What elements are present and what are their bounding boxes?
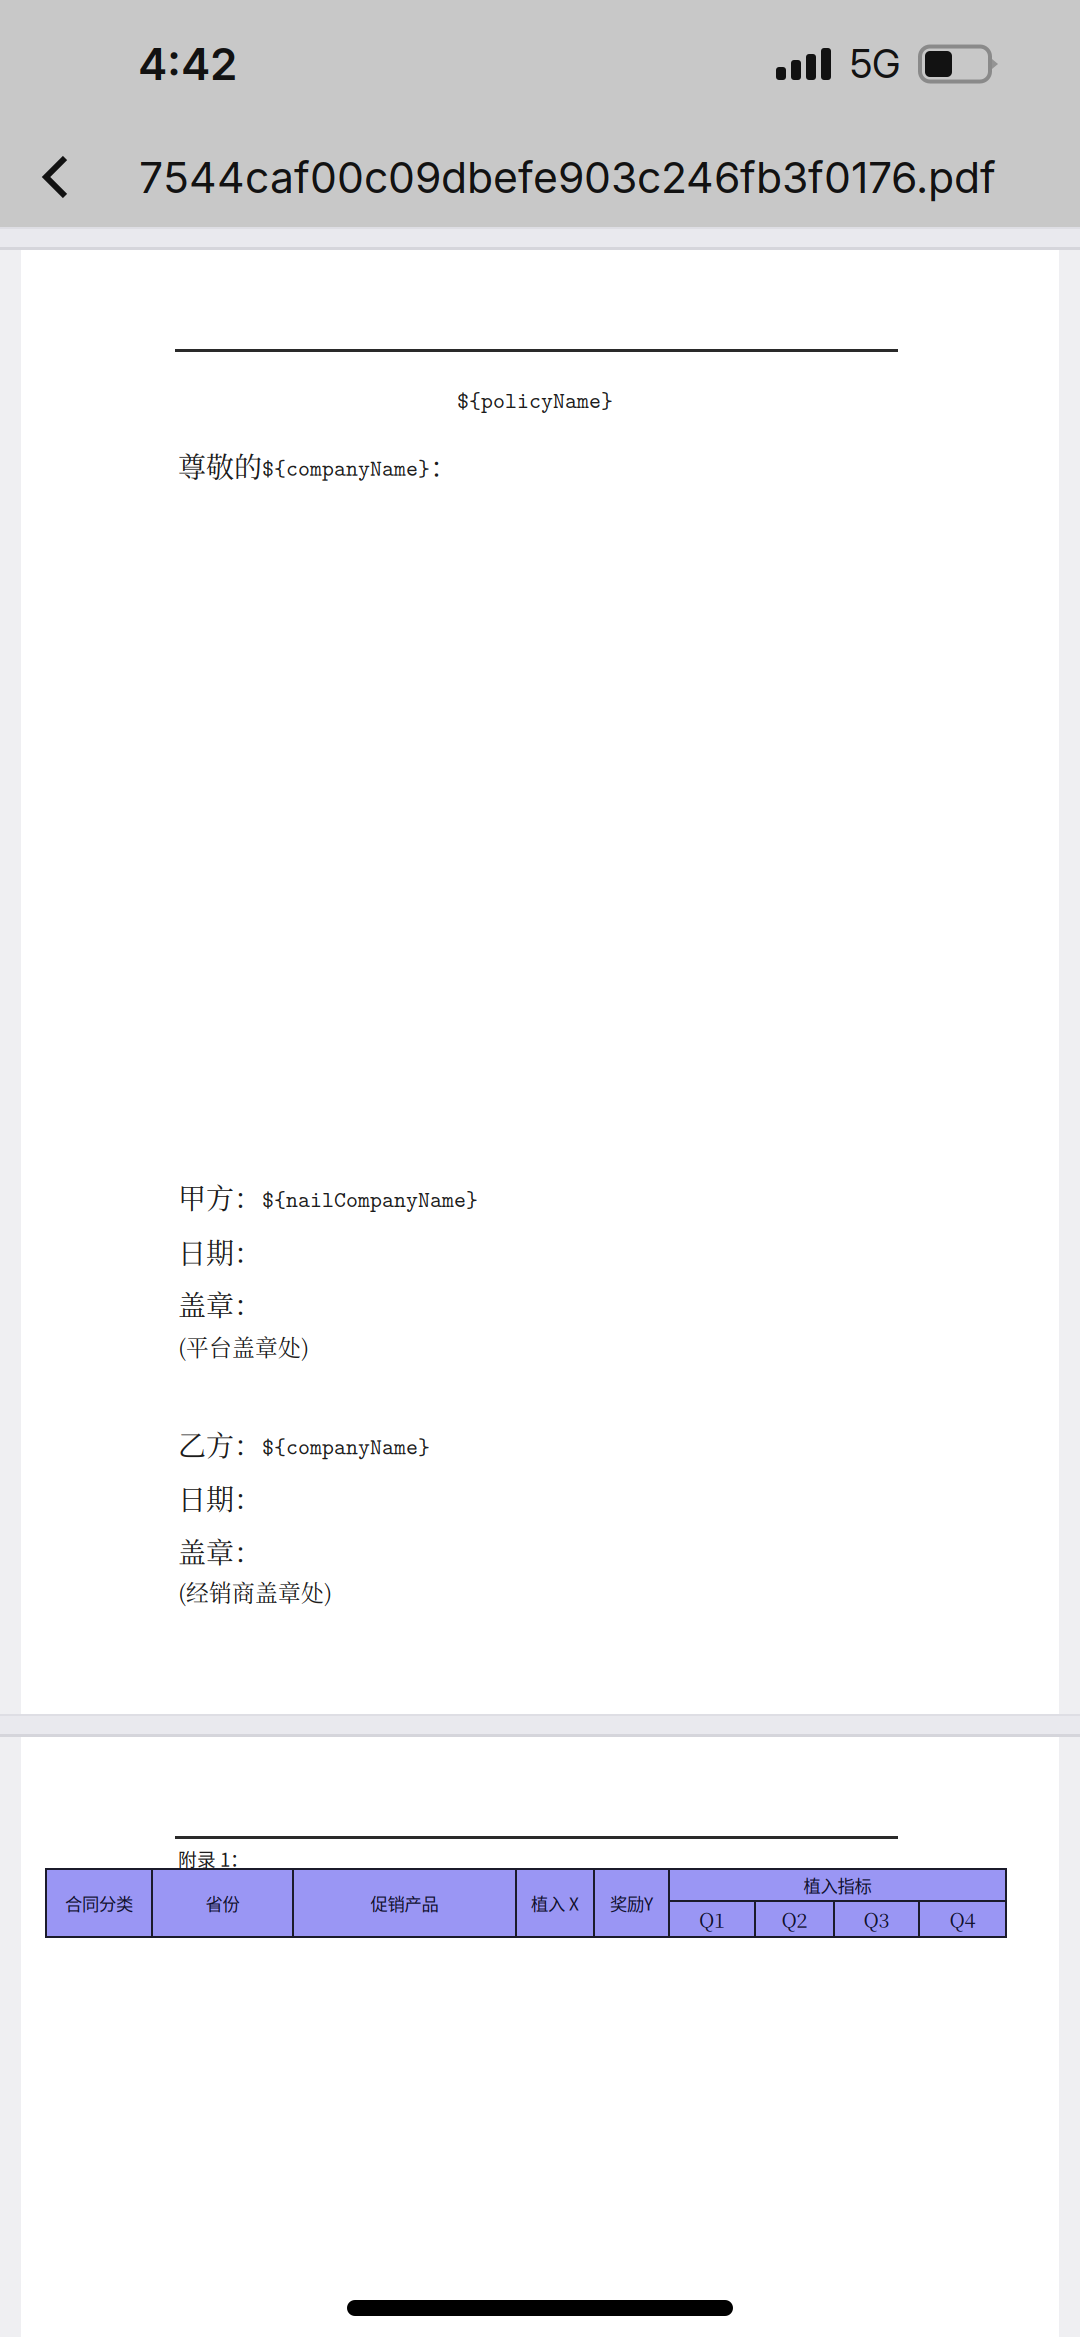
staticText: 盖章： <box>178 1284 262 1324</box>
staticText: 合同分类 <box>65 1890 133 1916</box>
staticText: 7544caf00c09dbefe903c246fb3f0176.pdf <box>139 152 996 203</box>
staticText: 4:42 <box>138 37 237 91</box>
staticText: 尊敬的${companyName}： <box>178 446 458 485</box>
staticText: (经销商盖章处) <box>178 1575 332 1608</box>
staticText: 盖章： <box>178 1531 262 1571</box>
staticText: 日期： <box>178 1478 262 1518</box>
staticText: 植入 X <box>531 1890 579 1916</box>
button[interactable]: Back <box>0 134 100 221</box>
staticText: Q4 <box>949 1905 975 1933</box>
staticText: 日期： <box>178 1231 262 1272</box>
staticText: 甲方：${nailCompanyName} <box>178 1177 478 1216</box>
staticText: 奖励Y <box>610 1890 653 1916</box>
staticText: ${policyName} <box>457 385 613 415</box>
staticText: 省份 <box>205 1890 239 1916</box>
staticText: Q1 <box>699 1905 725 1933</box>
staticText: 促销产品 <box>370 1890 438 1916</box>
staticText: 附录 1： <box>178 1845 249 1872</box>
staticText: 植入指标 <box>803 1872 871 1898</box>
staticText: 乙方：${companyName} <box>178 1424 430 1464</box>
staticText: 5G <box>850 41 900 87</box>
staticText: (平台盖章处) <box>178 1330 309 1362</box>
staticText: Q2 <box>781 1905 807 1933</box>
staticText: Q3 <box>863 1905 889 1933</box>
